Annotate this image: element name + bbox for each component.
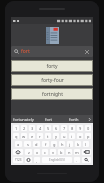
button[interactable]: Clear search [84, 49, 90, 55]
button[interactable]: c [42, 149, 48, 155]
staticText: forty-four [41, 77, 64, 84]
button[interactable]: e [29, 133, 35, 139]
staticText: 5 [47, 126, 50, 131]
staticText: g [53, 142, 56, 147]
button[interactable]: n [66, 149, 72, 155]
button[interactable]: 8 [69, 125, 75, 131]
staticText: c [44, 150, 46, 155]
button[interactable]: 3 [29, 125, 35, 131]
button[interactable]: j [67, 141, 73, 147]
button[interactable]: forty [12, 61, 92, 71]
staticText: 7 [63, 126, 66, 131]
button[interactable]: 6 [53, 125, 59, 131]
staticText: s [27, 142, 29, 147]
button[interactable]: l [83, 141, 89, 147]
staticText: y [55, 134, 58, 139]
staticText: x [36, 150, 39, 155]
button[interactable]: 0 [85, 125, 91, 131]
staticText: l [85, 142, 87, 147]
staticText: v [52, 150, 55, 155]
button[interactable]: u [61, 133, 67, 139]
staticText: z [28, 150, 30, 155]
staticText: t [47, 134, 49, 139]
button[interactable]: fortunately [11, 115, 36, 123]
staticText: . [76, 158, 78, 163]
staticText: , [36, 158, 38, 163]
button[interactable]: s [24, 141, 31, 147]
button[interactable]: z [25, 149, 32, 155]
button[interactable]: 5 [45, 125, 51, 131]
button[interactable]: y [53, 133, 59, 139]
staticText: 0 [87, 126, 90, 131]
button[interactable]: a [15, 141, 22, 147]
button[interactable]: b [58, 149, 64, 155]
staticText: i [71, 134, 73, 139]
button[interactable]: Emoji [25, 157, 32, 163]
button[interactable]: 2 [21, 125, 27, 131]
button[interactable]: r [37, 133, 43, 139]
button[interactable]: fort [11, 46, 93, 57]
staticText: w [22, 134, 26, 139]
staticText: fortunately [13, 117, 34, 122]
staticText: 1 [15, 126, 18, 131]
button[interactable]: Search [82, 157, 91, 163]
staticText: fort [21, 48, 30, 55]
button[interactable]: t [45, 133, 51, 139]
button[interactable]: f [42, 141, 49, 147]
button[interactable]: d [33, 141, 40, 147]
button[interactable]: ?123 [13, 157, 23, 163]
staticText: a [17, 142, 20, 147]
button[interactable]: i [69, 133, 75, 139]
staticText: j [69, 142, 71, 147]
staticText: k [77, 142, 80, 147]
button[interactable]: forth [61, 115, 86, 123]
button[interactable]: 1 [13, 125, 19, 131]
button[interactable]: m [74, 149, 80, 155]
button[interactable]: forty-four [12, 75, 92, 85]
button[interactable]: , [34, 157, 40, 163]
staticText: r [39, 134, 41, 139]
button[interactable]: fortnight [12, 89, 92, 99]
staticText: p [87, 134, 90, 139]
staticText: ?123 [15, 158, 22, 162]
staticText: u [63, 134, 66, 139]
staticText: 3 [31, 126, 34, 131]
button[interactable]: w [21, 133, 27, 139]
staticText: English(US) [49, 158, 65, 162]
button[interactable]: . [74, 157, 80, 163]
button[interactable]: 4 [37, 125, 43, 131]
button[interactable]: Backspace [82, 149, 91, 155]
staticText: m [75, 150, 79, 155]
button[interactable]: o [77, 133, 83, 139]
staticText: 4 [39, 126, 42, 131]
staticText: fortnight [42, 91, 63, 98]
staticText: 6 [55, 126, 58, 131]
button[interactable]: v [50, 149, 56, 155]
staticText: 8 [71, 126, 74, 131]
button[interactable]: p [85, 133, 91, 139]
button[interactable]: x [34, 149, 40, 155]
button[interactable]: g [51, 141, 57, 147]
staticText: e [31, 134, 34, 139]
staticText: 9 [79, 126, 82, 131]
button[interactable]: h [59, 141, 65, 147]
button[interactable]: 7 [61, 125, 67, 131]
staticText: forty [46, 63, 58, 70]
button[interactable]: More suggestions [86, 115, 93, 123]
button[interactable]: English(US) [42, 157, 72, 163]
button[interactable]: fort [36, 115, 61, 123]
staticText: o [79, 134, 82, 139]
staticText: n [68, 150, 71, 155]
staticText: 2 [23, 126, 26, 131]
staticText: f [45, 142, 47, 147]
staticText: fort [45, 117, 52, 122]
staticText: q [15, 134, 18, 139]
staticText: d [35, 142, 38, 147]
button[interactable]: k [75, 141, 81, 147]
button[interactable]: 9 [77, 125, 83, 131]
staticText: h [61, 142, 64, 147]
button[interactable]: Shift [13, 149, 23, 155]
staticText: forth [69, 117, 79, 122]
staticText: b [60, 150, 63, 155]
button[interactable]: q [13, 133, 19, 139]
